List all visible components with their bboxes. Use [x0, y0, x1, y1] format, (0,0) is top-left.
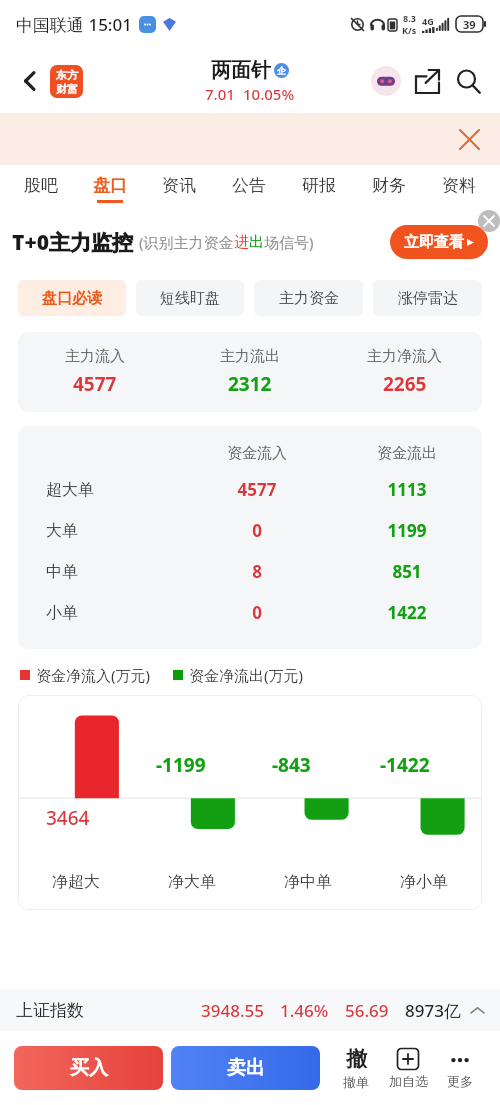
button[interactable]: Back [10, 61, 50, 101]
staticText: 资金净流入(万元) [36, 665, 151, 685]
staticText: 撤 [346, 1046, 367, 1072]
staticText: 中国联通 15:01 [16, 13, 132, 36]
staticText: 2265 [383, 371, 427, 397]
button[interactable]: 资讯 [144, 165, 214, 212]
staticText: 场信号) [264, 232, 314, 252]
staticText: 出 [249, 233, 264, 252]
button[interactable]: East Money [50, 65, 83, 98]
staticText: 10.05% [243, 84, 295, 104]
staticText: 大单 [46, 521, 78, 541]
button[interactable]: 涨停雷达 [373, 280, 482, 316]
button[interactable]: 短线盯盘 [136, 280, 244, 316]
staticText: 资金流入 [182, 444, 332, 463]
staticText: 8.3 [403, 12, 416, 24]
staticText: 1422 [332, 601, 482, 624]
button[interactable]: 主力流入 [18, 347, 482, 397]
staticText: 0 [182, 601, 332, 624]
staticText: 8973亿 [405, 999, 461, 1022]
staticText: 上证指数 [16, 1000, 84, 1021]
staticText: -1199 [156, 752, 206, 778]
staticText: 4G [422, 15, 434, 27]
staticText: 超大单 [46, 480, 94, 500]
button[interactable]: 立即查看 [390, 225, 488, 259]
staticText: 研报 [302, 175, 336, 196]
staticText: 3948.55 [201, 999, 264, 1022]
staticText: 1113 [332, 478, 482, 501]
button[interactable]: 加自选 [382, 1048, 434, 1089]
staticText: 加自选 [389, 1073, 428, 1089]
button[interactable]: 买入 [14, 1046, 163, 1090]
button[interactable]: 股吧 [6, 165, 75, 212]
staticText: 主力流入 [65, 347, 125, 366]
staticText: 股吧 [24, 175, 58, 196]
staticText: 短线盯盘 [160, 289, 220, 308]
staticText: 财富 [56, 82, 78, 96]
staticText: K/s [402, 24, 417, 36]
button[interactable]: 公告 [214, 165, 284, 212]
staticText: 1.46% [280, 999, 329, 1022]
button[interactable]: 卖出 [171, 1046, 320, 1090]
button[interactable]: 资料 [424, 165, 494, 212]
staticText: 净中单 [250, 872, 366, 892]
staticText: 4577 [73, 371, 117, 397]
staticText: 盘口必读 [42, 289, 102, 308]
staticText: 0 [182, 519, 332, 542]
staticText: -1422 [380, 752, 430, 778]
staticText: 8 [182, 560, 332, 583]
staticText: 资金净流出(万元) [189, 665, 304, 685]
button[interactable]: AI assistant [368, 63, 404, 99]
staticText: 中单 [46, 562, 78, 582]
staticText: 7.01 [205, 84, 235, 104]
button[interactable]: Close ad [478, 210, 500, 232]
staticText: 39 [463, 17, 476, 32]
staticText: 更多 [447, 1073, 473, 1089]
staticText: 公告 [232, 175, 266, 196]
staticText: 资讯 [162, 175, 196, 196]
staticText: 卖出 [227, 1056, 265, 1080]
button[interactable]: 撤 [330, 1046, 382, 1090]
button[interactable]: 盘口 [75, 165, 144, 212]
staticText: 财务 [372, 175, 406, 196]
staticText: 主力资金 [279, 289, 339, 308]
staticText: (识别主力资金 [139, 232, 234, 252]
staticText: 小单 [46, 603, 78, 623]
button[interactable]: Search [448, 61, 488, 101]
staticText: 盘口 [93, 175, 127, 196]
staticText: 撤单 [343, 1074, 369, 1090]
staticText: 56.69 [345, 999, 389, 1022]
staticText: 主力流出 [220, 347, 280, 366]
staticText: 立即查看 [404, 233, 464, 252]
staticText: 进 [234, 233, 249, 252]
button[interactable]: 财务 [354, 165, 424, 212]
staticText: 1199 [332, 519, 482, 542]
staticText: 3464 [46, 805, 90, 831]
button[interactable]: 资金流入 [18, 438, 482, 633]
staticText: 资金流出 [332, 444, 482, 463]
staticText: -843 [272, 752, 311, 778]
staticText: 净大单 [134, 872, 250, 892]
staticText: T+0主力监控 [12, 228, 134, 257]
staticText: 企 [277, 65, 286, 76]
staticText: 4577 [182, 478, 332, 501]
staticText: 净小单 [366, 872, 482, 892]
staticText: 2312 [228, 371, 272, 397]
button[interactable]: 更多 [434, 1048, 486, 1089]
staticText: 两面针 [211, 58, 271, 83]
button[interactable]: Share [408, 62, 446, 100]
button[interactable]: Close banner [452, 122, 486, 156]
staticText: 涨停雷达 [398, 289, 458, 308]
button[interactable]: 主力资金 [254, 280, 363, 316]
button[interactable]: 研报 [284, 165, 354, 212]
staticText: 主力净流入 [367, 347, 442, 366]
button[interactable]: 3464 [18, 695, 482, 910]
staticText: 资料 [442, 175, 476, 196]
button[interactable]: 上证指数 [0, 989, 500, 1031]
staticText: 净超大 [18, 872, 134, 892]
staticText: 851 [332, 560, 482, 583]
staticText: 买入 [70, 1056, 108, 1080]
button[interactable]: 盘口必读 [18, 280, 126, 316]
staticText: 东方 [56, 68, 78, 82]
